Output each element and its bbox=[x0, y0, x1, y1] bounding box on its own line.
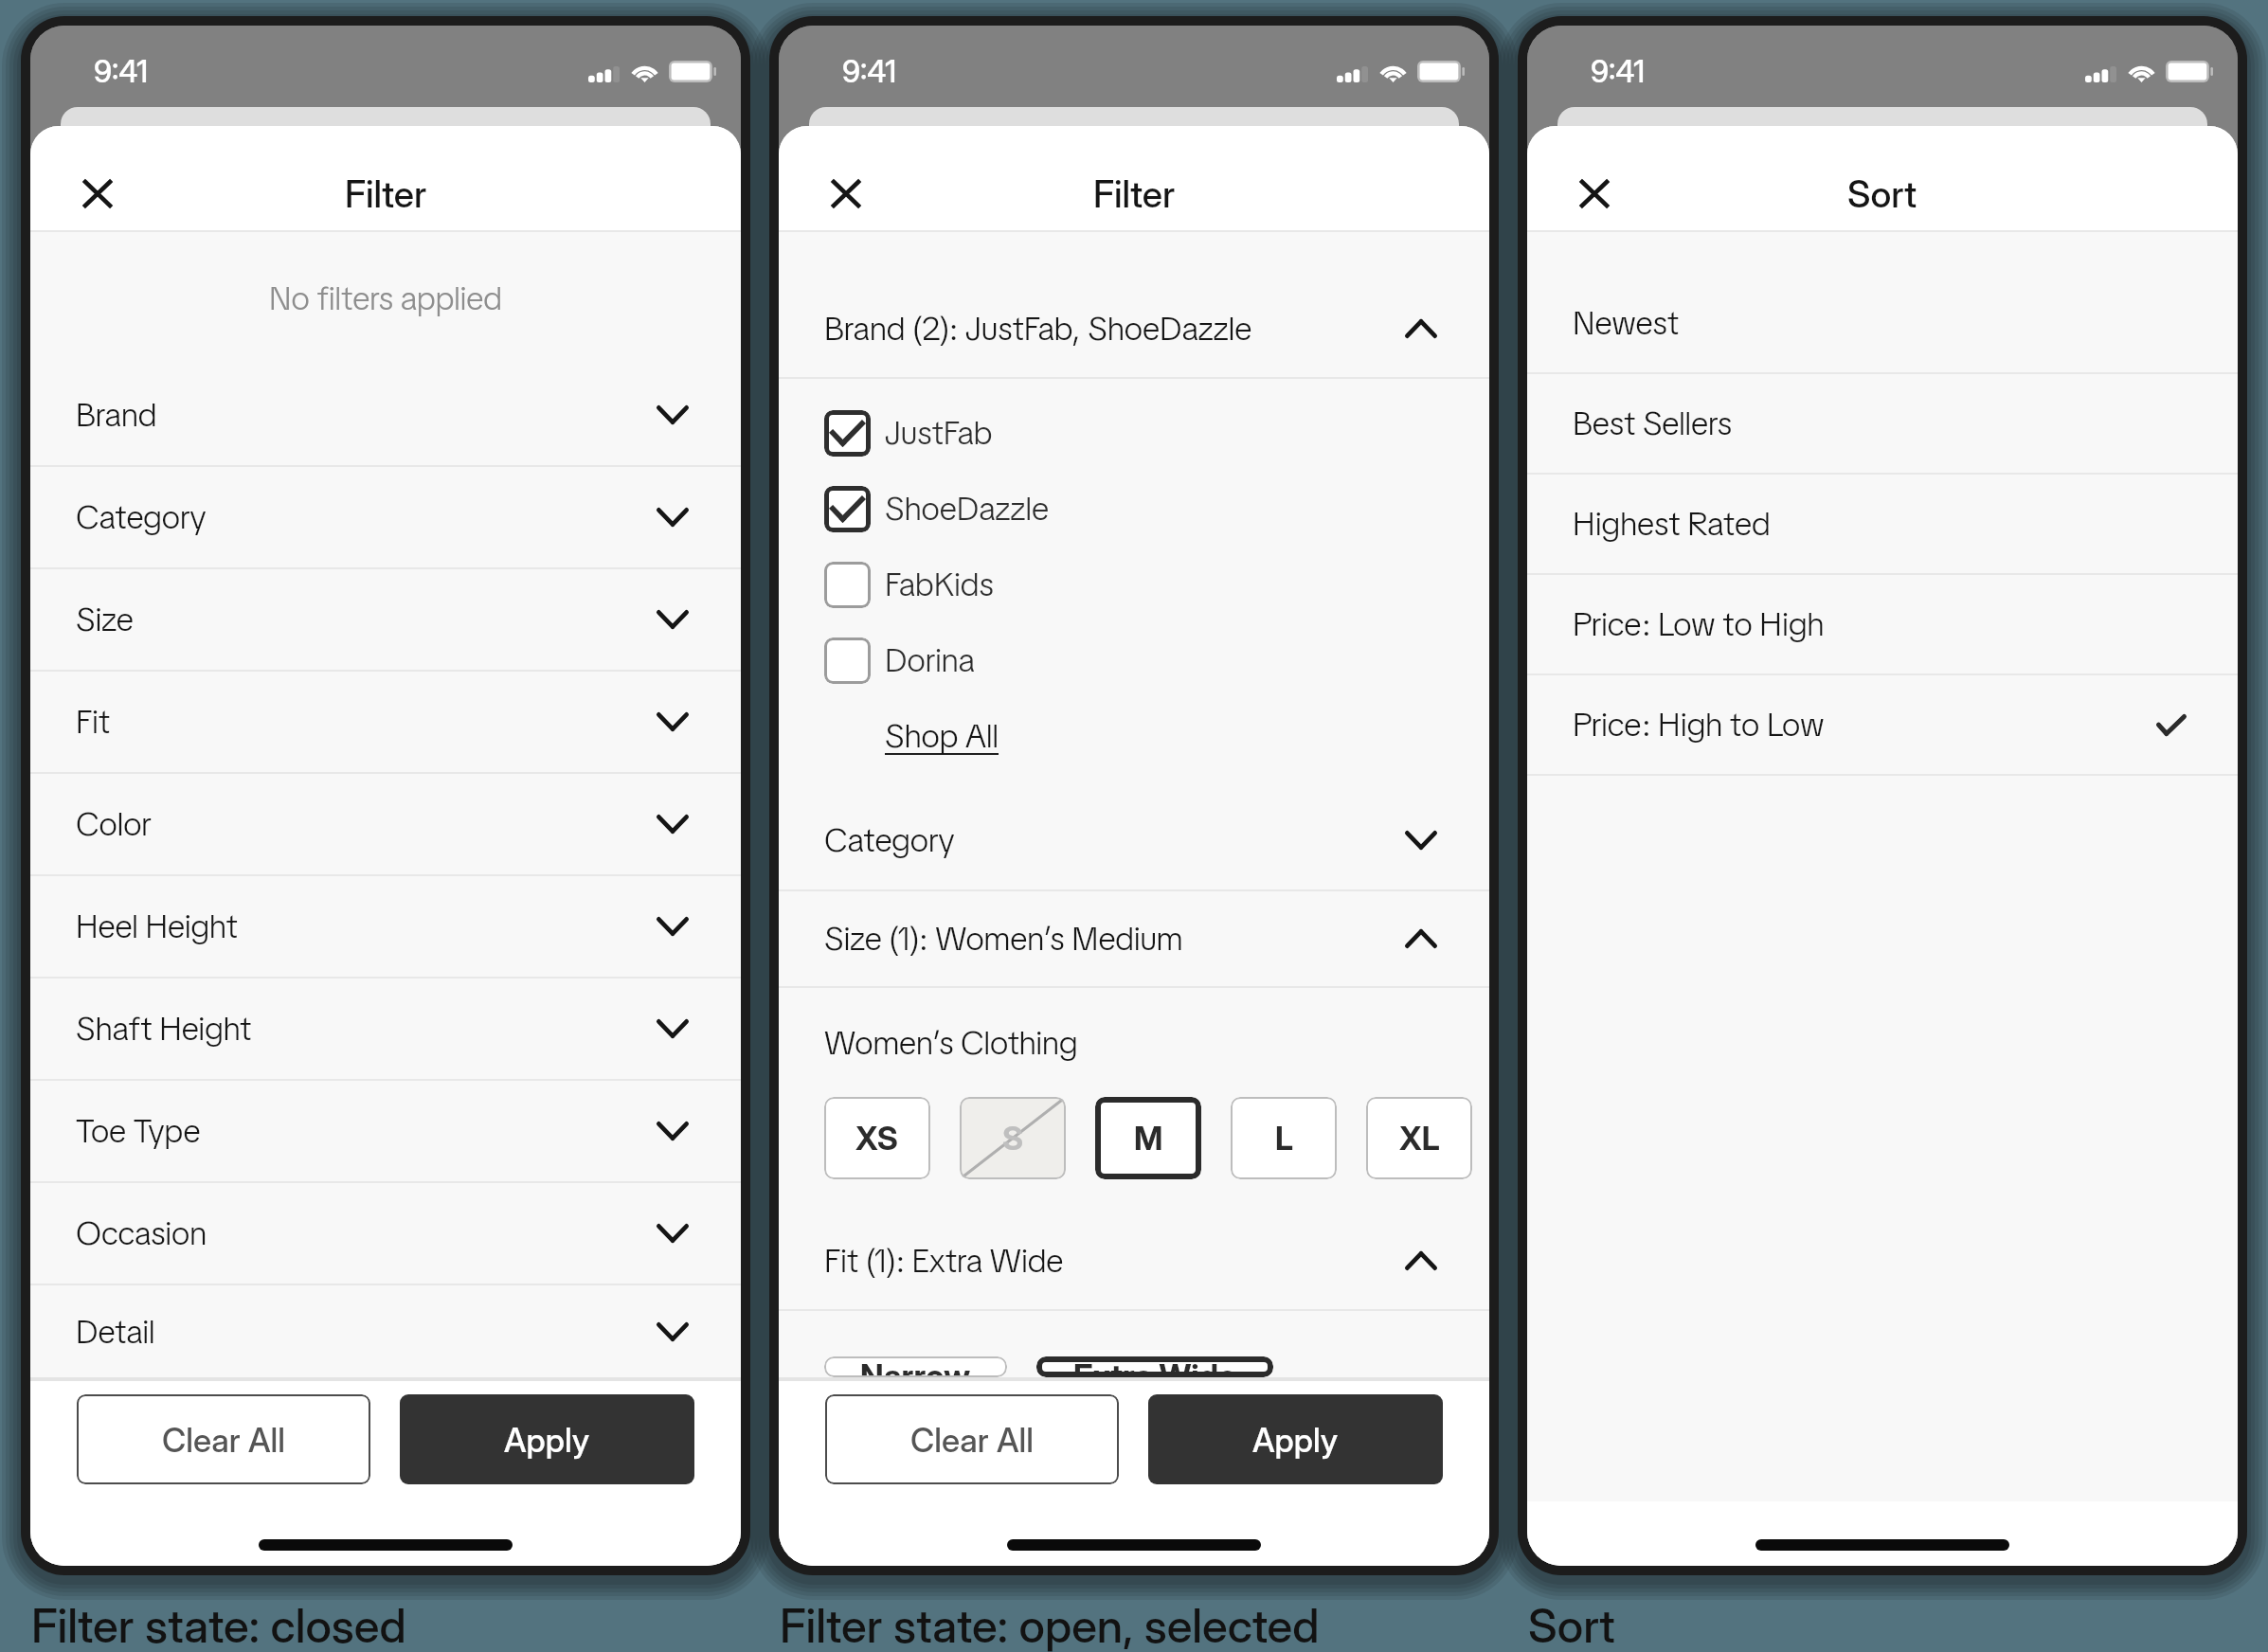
staticText: Heel Height bbox=[76, 905, 238, 948]
button[interactable]: Fit bbox=[30, 672, 741, 772]
staticText: Apply bbox=[504, 1420, 590, 1460]
button[interactable]: Apply bbox=[1148, 1394, 1443, 1484]
staticText: Clear All bbox=[910, 1420, 1034, 1460]
staticText: Shaft Height bbox=[76, 1007, 252, 1050]
button[interactable]: Fit (1): Extra Wide bbox=[779, 1212, 1489, 1309]
button[interactable]: Color bbox=[30, 774, 741, 874]
staticText: 9:41 bbox=[842, 53, 897, 90]
button[interactable]: Highest Rated bbox=[1527, 475, 2238, 573]
staticText: No filters applied bbox=[269, 277, 502, 320]
staticText: Filter state: open, selected bbox=[780, 1598, 1320, 1652]
button[interactable]: Toe Type bbox=[30, 1081, 741, 1181]
staticText: S bbox=[1002, 1119, 1024, 1158]
button[interactable]: Extra Wide bbox=[1036, 1356, 1273, 1377]
button[interactable]: Size bbox=[30, 569, 741, 670]
button[interactable]: Occasion bbox=[30, 1183, 741, 1284]
button[interactable]: L bbox=[1231, 1097, 1337, 1179]
staticText: FabKids bbox=[885, 563, 994, 606]
button[interactable]: XS bbox=[824, 1097, 930, 1179]
staticText: Highest Rated bbox=[1573, 502, 1771, 546]
button[interactable]: Newest bbox=[1527, 274, 2238, 372]
staticText: M bbox=[1134, 1119, 1163, 1158]
button[interactable]: Apply bbox=[400, 1394, 694, 1484]
button[interactable]: Category bbox=[30, 467, 741, 567]
button[interactable]: JustFab bbox=[779, 395, 1489, 471]
button[interactable]: Heel Height bbox=[30, 876, 741, 977]
staticText: Shop All bbox=[885, 714, 999, 758]
staticText: Size bbox=[76, 598, 134, 641]
button[interactable]: ShoeDazzle bbox=[779, 471, 1489, 547]
staticText: Clear All bbox=[162, 1420, 285, 1460]
staticText: Newest bbox=[1573, 301, 1679, 345]
button[interactable]: Shaft Height bbox=[30, 979, 741, 1079]
staticText: Fit (1): Extra Wide bbox=[824, 1239, 1064, 1283]
staticText: Category bbox=[824, 818, 955, 862]
button[interactable]: Clear All bbox=[77, 1394, 370, 1484]
staticText: L bbox=[1275, 1119, 1293, 1158]
staticText: 9:41 bbox=[1591, 53, 1646, 90]
staticText: Toe Type bbox=[76, 1109, 201, 1153]
staticText: Occasion bbox=[76, 1212, 207, 1255]
staticText: Sort bbox=[1528, 1598, 1615, 1652]
staticText: 9:41 bbox=[94, 53, 149, 90]
staticText: Category bbox=[76, 495, 207, 539]
button[interactable]: Brand bbox=[30, 365, 741, 465]
button[interactable]: Brand (2): JustFab, ShoeDazzle bbox=[779, 280, 1489, 377]
button[interactable]: Shop All bbox=[779, 698, 1489, 774]
staticText: Dorina bbox=[885, 638, 975, 682]
button[interactable]: Close bbox=[1561, 160, 1628, 226]
staticText: JustFab bbox=[885, 411, 993, 455]
staticText: Fit bbox=[76, 700, 110, 744]
staticText: Women’s Clothing bbox=[824, 1021, 1078, 1065]
staticText: Color bbox=[76, 802, 152, 846]
staticText: Detail bbox=[76, 1310, 155, 1354]
button[interactable]: FabKids bbox=[779, 547, 1489, 622]
staticText: Brand bbox=[76, 393, 157, 437]
button[interactable]: Category bbox=[779, 791, 1489, 889]
staticText: Apply bbox=[1252, 1420, 1339, 1460]
staticText: Sort bbox=[1847, 171, 1917, 216]
staticText: Best Sellers bbox=[1573, 402, 1732, 445]
button[interactable]: XL bbox=[1366, 1097, 1472, 1179]
staticText: Price: High to Low bbox=[1573, 703, 1825, 746]
button[interactable]: Price: High to Low bbox=[1527, 675, 2238, 774]
button[interactable]: Price: Low to High bbox=[1527, 575, 2238, 673]
staticText: Price: Low to High bbox=[1573, 602, 1825, 646]
button[interactable]: Close bbox=[813, 160, 879, 226]
staticText: Narrow bbox=[860, 1356, 971, 1377]
button[interactable]: Detail bbox=[30, 1285, 741, 1377]
button[interactable]: Close bbox=[64, 160, 131, 226]
staticText: XS bbox=[855, 1119, 899, 1158]
button[interactable]: Size (1): Women’s Medium bbox=[779, 891, 1489, 986]
staticText: XL bbox=[1399, 1119, 1440, 1158]
staticText: ShoeDazzle bbox=[885, 487, 1049, 530]
staticText: Extra Wide bbox=[1073, 1356, 1237, 1377]
button[interactable]: Narrow bbox=[824, 1356, 1007, 1377]
staticText: Size (1): Women’s Medium bbox=[824, 917, 1183, 961]
button[interactable]: S bbox=[960, 1097, 1066, 1179]
button[interactable]: Best Sellers bbox=[1527, 374, 2238, 473]
staticText: Filter bbox=[345, 171, 427, 216]
staticText: Filter bbox=[1093, 171, 1176, 216]
button[interactable]: Dorina bbox=[779, 622, 1489, 698]
button[interactable]: M bbox=[1095, 1097, 1201, 1179]
staticText: Brand (2): JustFab, ShoeDazzle bbox=[824, 307, 1252, 350]
button[interactable]: Clear All bbox=[825, 1394, 1119, 1484]
staticText: Filter state: closed bbox=[31, 1598, 406, 1652]
